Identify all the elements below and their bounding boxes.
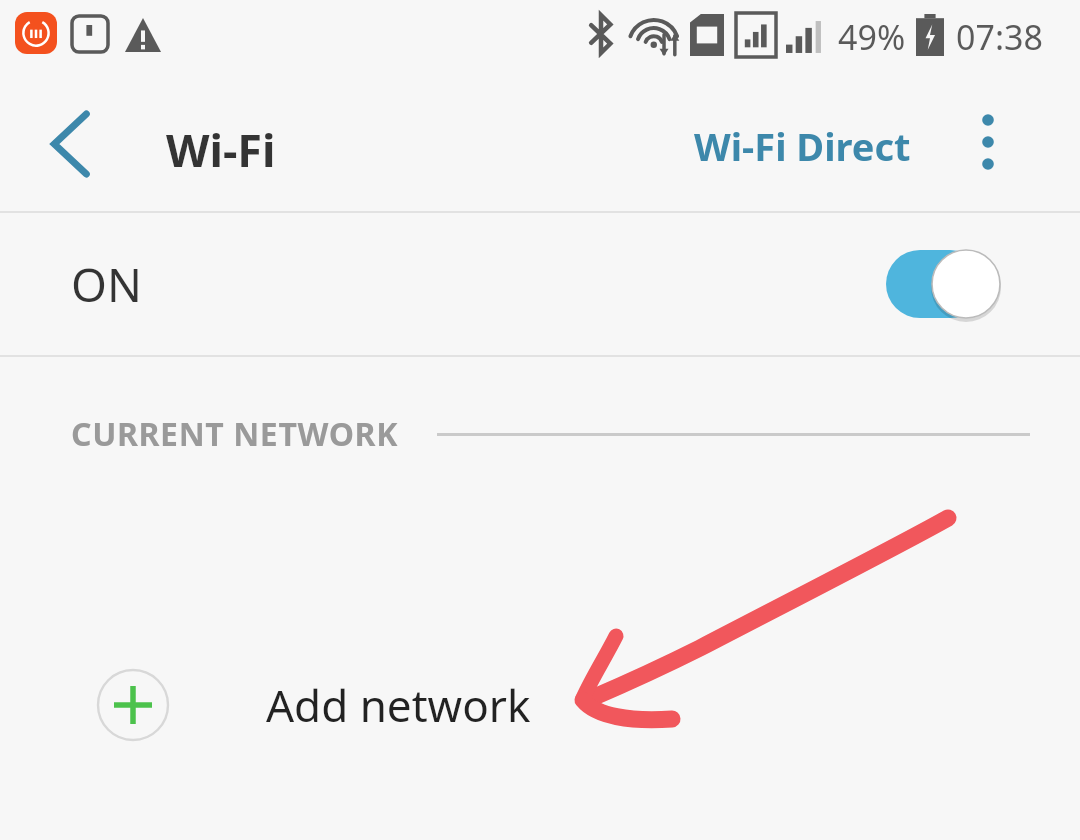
button[interactable]: ON [0, 213, 1080, 355]
staticText: ON [71, 253, 142, 316]
button[interactable]: Back [30, 102, 114, 186]
staticText: 07:38 [956, 14, 1043, 60]
staticText: Wi-Fi [166, 119, 276, 180]
button[interactable]: More options [950, 104, 1026, 180]
staticText: Add network [266, 675, 531, 735]
staticText: 49% [838, 14, 906, 60]
button[interactable]: Wi-Fi Direct [680, 106, 925, 186]
staticText: Wi-Fi Direct [694, 120, 911, 172]
button[interactable]: Add network [0, 632, 1080, 778]
staticText: CURRENT NETWORK [71, 412, 399, 456]
